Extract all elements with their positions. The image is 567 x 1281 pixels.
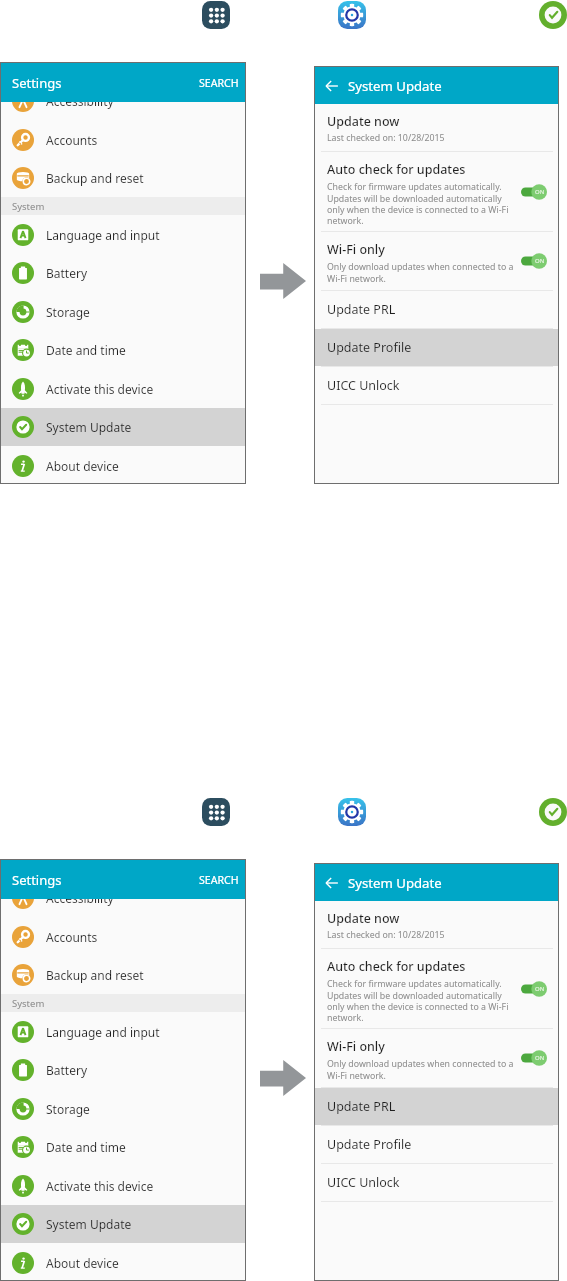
staticText: System Update (348, 77, 442, 95)
button[interactable]: System Update (1, 1205, 245, 1243)
button[interactable]: Backup and reset (1, 159, 245, 197)
staticText: Language and input (46, 227, 160, 243)
button[interactable]: SEARCH (198, 74, 240, 92)
staticText: Battery (46, 265, 88, 281)
staticText: UICC Unlock (327, 1174, 400, 1191)
button[interactable]: Language and input (1, 1012, 245, 1051)
button[interactable]: UICC Unlock (315, 367, 558, 404)
button[interactable]: Apps (202, 798, 230, 826)
button[interactable]: Wi-Fi only (315, 1029, 558, 1087)
staticText: SEARCH (199, 76, 239, 90)
staticText: About device (46, 1255, 119, 1271)
staticText: Wi-Fi only (327, 1038, 385, 1055)
button[interactable]: Back (325, 79, 339, 93)
staticText: Battery (46, 1062, 88, 1078)
staticText: Last checked on: 10/28/2015 (327, 132, 445, 144)
button[interactable]: Storage (1, 1089, 245, 1128)
staticText: Update Profile (327, 339, 412, 356)
staticText: Accounts (46, 132, 98, 148)
staticText: Storage (46, 1101, 90, 1117)
button[interactable]: Update Profile (315, 329, 558, 366)
staticText: ON (535, 1054, 545, 1062)
button[interactable]: Settings (338, 1, 366, 29)
button[interactable]: Accessibility (1, 82, 245, 120)
staticText: Check for firmware updates automatically… (327, 181, 518, 226)
staticText: Update now (327, 910, 400, 927)
staticText: System Update (46, 1216, 132, 1232)
button[interactable]: Battery (1, 1051, 245, 1089)
button[interactable]: Apps (202, 1, 230, 29)
staticText: ON (535, 257, 545, 265)
staticText: Language and input (46, 1024, 160, 1040)
staticText: Backup and reset (46, 967, 144, 983)
button[interactable]: Update now (315, 901, 558, 948)
button[interactable]: ON (521, 253, 547, 269)
button[interactable]: System Update (539, 1, 567, 29)
staticText: Only download updates when connected to … (327, 1058, 518, 1081)
staticText: Auto check for updates (327, 958, 466, 975)
button[interactable]: Storage (1, 292, 245, 331)
button[interactable]: SEARCH (198, 871, 240, 889)
button[interactable]: Update Profile (315, 1126, 558, 1163)
button[interactable]: Language and input (1, 215, 245, 254)
button[interactable]: System Update (1, 408, 245, 446)
staticText: Settings (12, 74, 62, 92)
button[interactable]: About device (1, 446, 245, 483)
button[interactable]: System Update (539, 798, 567, 826)
staticText: Update now (327, 113, 400, 130)
staticText: SEARCH (199, 873, 239, 887)
button[interactable]: About device (1, 1243, 245, 1280)
button[interactable]: Accessibility (1, 879, 245, 917)
staticText: Storage (46, 304, 90, 320)
button[interactable]: Activate this device (1, 369, 245, 408)
button[interactable]: Battery (1, 254, 245, 292)
button[interactable]: ON (521, 1050, 547, 1066)
staticText: Update Profile (327, 1136, 412, 1153)
button[interactable]: Accounts (1, 120, 245, 159)
button[interactable]: Auto check for updates (315, 152, 558, 231)
staticText: UICC Unlock (327, 377, 400, 394)
button[interactable]: Update now (315, 104, 558, 151)
staticText: Activate this device (46, 1178, 154, 1194)
staticText: Wi-Fi only (327, 241, 385, 258)
staticText: Backup and reset (46, 170, 144, 186)
button[interactable]: Settings (338, 798, 366, 826)
staticText: Update PRL (327, 301, 396, 318)
button[interactable]: ON (521, 981, 547, 997)
staticText: System Update (348, 874, 442, 892)
button[interactable]: ON (521, 184, 547, 200)
button[interactable]: Backup and reset (1, 956, 245, 994)
staticText: Date and time (46, 1139, 126, 1155)
staticText: Auto check for updates (327, 161, 466, 178)
button[interactable]: Update PRL (315, 1088, 558, 1125)
staticText: Accessibility (46, 93, 114, 109)
staticText: Check for firmware updates automatically… (327, 978, 518, 1023)
staticText: Update PRL (327, 1098, 396, 1115)
staticText: ON (535, 985, 545, 993)
staticText: ON (535, 188, 545, 196)
staticText: Settings (12, 871, 62, 889)
button[interactable]: Accounts (1, 917, 245, 956)
staticText: System (12, 200, 45, 213)
staticText: Only download updates when connected to … (327, 261, 518, 284)
button[interactable]: Date and time (1, 1128, 245, 1166)
staticText: System (12, 997, 45, 1010)
staticText: System Update (46, 419, 132, 435)
staticText: Accounts (46, 929, 98, 945)
staticText: Date and time (46, 342, 126, 358)
button[interactable]: Date and time (1, 331, 245, 369)
button[interactable]: Back (325, 876, 339, 890)
button[interactable]: UICC Unlock (315, 1164, 558, 1201)
button[interactable]: Auto check for updates (315, 949, 558, 1028)
button[interactable]: Update PRL (315, 291, 558, 328)
button[interactable]: Wi-Fi only (315, 232, 558, 290)
staticText: Accessibility (46, 890, 114, 906)
button[interactable]: Activate this device (1, 1166, 245, 1205)
staticText: Last checked on: 10/28/2015 (327, 929, 445, 941)
staticText: Activate this device (46, 381, 154, 397)
staticText: About device (46, 458, 119, 474)
